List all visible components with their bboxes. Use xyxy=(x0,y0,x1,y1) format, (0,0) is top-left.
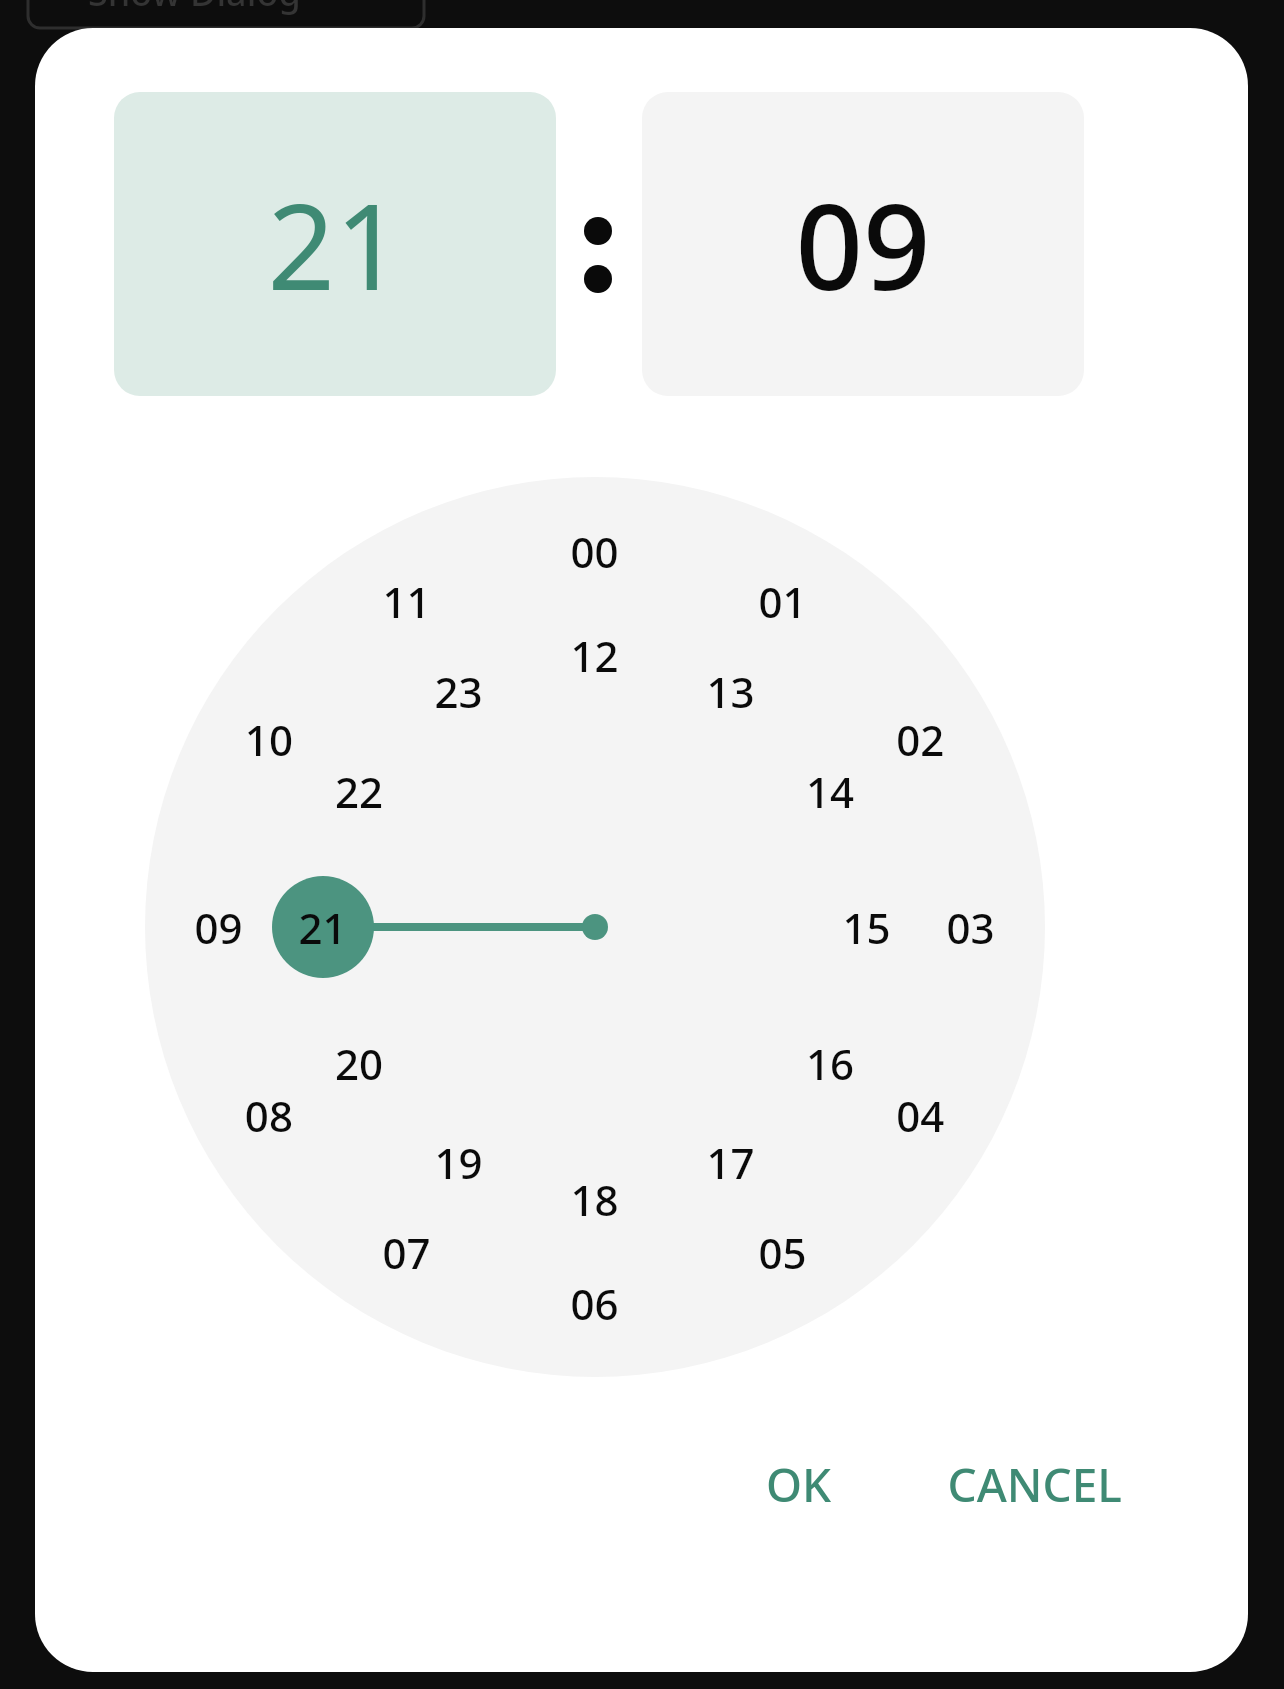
button[interactable]: OK xyxy=(744,1440,854,1528)
button[interactable]: Select minute, 09 xyxy=(642,92,1084,396)
button[interactable]: Cancel xyxy=(942,1440,1128,1528)
button[interactable]: Select hour, 21 xyxy=(114,92,556,396)
button[interactable]: Clock dial, 24 hour xyxy=(145,477,1045,1377)
